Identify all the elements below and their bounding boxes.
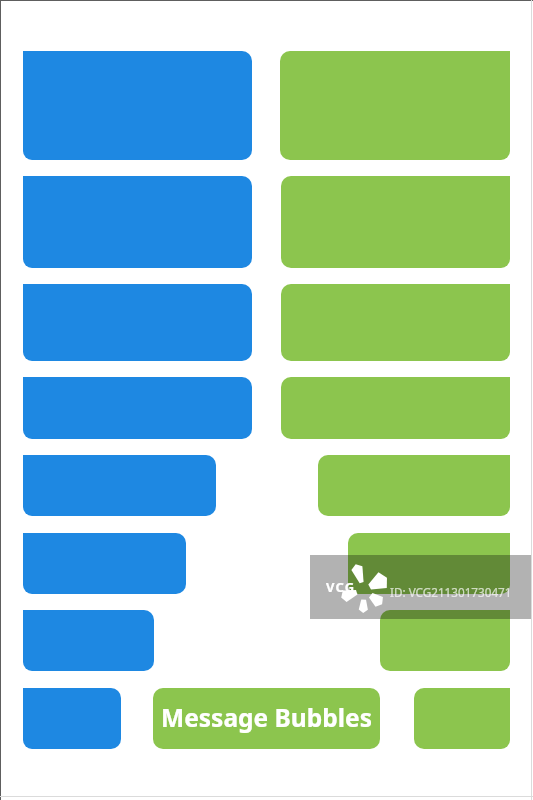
button[interactable]: Outgoing message bubble xyxy=(414,688,510,749)
button[interactable]: Outgoing message bubble xyxy=(281,377,510,439)
staticText: ID: VCG211301730471 xyxy=(390,584,512,600)
button[interactable]: Outgoing message bubble xyxy=(318,455,510,516)
button[interactable]: Outgoing message bubble xyxy=(380,610,510,671)
button[interactable]: Outgoing message bubble xyxy=(281,176,510,268)
staticText: Message Bubbles xyxy=(161,701,372,734)
button[interactable]: Message Bubbles xyxy=(153,688,380,749)
button[interactable]: Incoming message bubble xyxy=(23,533,186,594)
button[interactable]: Incoming message bubble xyxy=(23,688,121,749)
button[interactable]: Outgoing message bubble xyxy=(281,284,510,361)
button[interactable]: Incoming message bubble xyxy=(23,610,154,671)
button[interactable]: Incoming message bubble xyxy=(23,284,252,361)
button[interactable]: Incoming message bubble xyxy=(23,377,252,439)
staticText: VCG xyxy=(326,578,356,596)
button[interactable]: Incoming message bubble xyxy=(23,176,252,268)
button[interactable]: Outgoing message bubble xyxy=(348,533,510,594)
button[interactable]: Incoming message bubble xyxy=(23,455,216,516)
button[interactable]: Outgoing message bubble xyxy=(280,51,510,160)
button[interactable]: Incoming message bubble xyxy=(23,51,252,160)
